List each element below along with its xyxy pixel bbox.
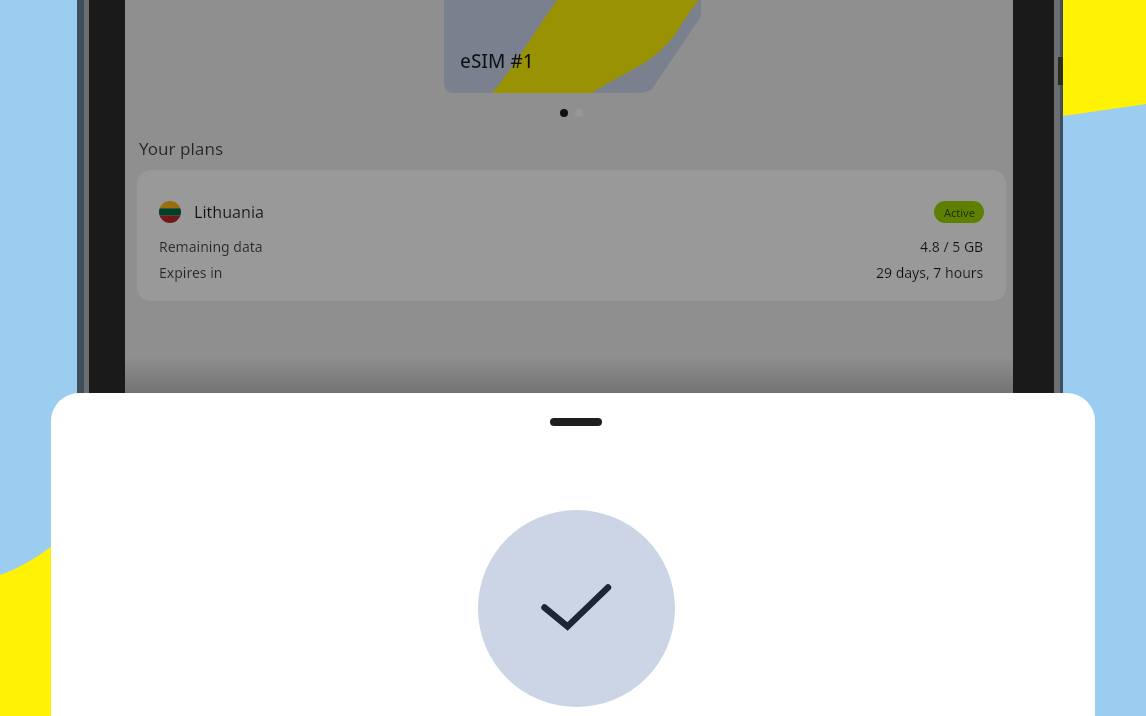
staticText: Your plans bbox=[139, 137, 224, 160]
button[interactable]: Lithuania bbox=[137, 170, 1006, 301]
button[interactable]: eSIM #1 card bbox=[444, 0, 701, 93]
staticText: eSIM #1 bbox=[460, 48, 534, 74]
staticText: Remaining data bbox=[159, 237, 263, 256]
staticText: Active bbox=[944, 205, 975, 220]
button[interactable]: Drag handle bbox=[550, 418, 602, 426]
staticText: 29 days, 7 hours bbox=[876, 263, 984, 282]
staticText: 4.8 / 5 GB bbox=[920, 237, 984, 256]
button[interactable]: Active bbox=[934, 201, 984, 223]
staticText: Lithuania bbox=[194, 201, 265, 223]
staticText: Expires in bbox=[159, 263, 223, 282]
